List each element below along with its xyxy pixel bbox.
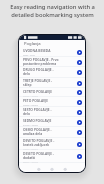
- other: Play chapter: [77, 130, 82, 135]
- staticText: DRUGO POGLAVJE -: [23, 67, 54, 71]
- staticText: SESTO POGLAVJE -: [23, 107, 52, 111]
- staticText: DESETO POGLAVJE -: [23, 151, 54, 155]
- staticText: 61:49 - 72:07: [23, 123, 38, 126]
- other: Play chapter: [77, 90, 82, 95]
- staticText: kratek zakljucek: [23, 142, 50, 146]
- button[interactable]: DEVETO POGLAVJE -: [19, 138, 85, 150]
- staticText: UVODNA BESEDA: [23, 48, 51, 52]
- staticText: dodatki: [23, 155, 36, 159]
- staticText: Poglavja: [24, 41, 41, 47]
- staticText: 34:22 - 47:52: [23, 94, 38, 97]
- staticText: detailed bookmarking system: [11, 11, 94, 19]
- other: Play chapter: [77, 142, 82, 147]
- staticText: 47:52 - 55:54: [23, 103, 38, 106]
- button[interactable]: PRVO POGLAVJE - Prvo: [19, 57, 85, 67]
- button[interactable]: SESTO POGLAVJE -: [19, 107, 85, 117]
- staticText: DEVETO POGLAVJE -: [23, 138, 55, 142]
- other: Play chapter: [77, 120, 82, 125]
- staticText: 88:57 - 93:33: [23, 160, 38, 163]
- other: Play chapter: [77, 100, 82, 105]
- staticText: OSMO POGLAVJE -: [23, 127, 52, 131]
- staticText: analiza dela: [23, 131, 43, 135]
- other: Play chapter: [77, 154, 82, 159]
- staticText: CETRTO POGLAVJE: [23, 89, 53, 93]
- staticText: 72:07 - 79:54: [23, 136, 38, 138]
- button[interactable]: DESETO POGLAVJE -: [19, 150, 85, 163]
- button[interactable]: UVODNA BESEDA: [19, 47, 85, 57]
- button[interactable]: CETRTO POGLAVJE: [19, 88, 85, 97]
- button[interactable]: DRUGO POGLAVJE -: [19, 67, 85, 78]
- staticText: PRVO POGLAVJE - Prvo: [23, 57, 59, 61]
- button[interactable]: PETO POGLAVJE: [19, 97, 85, 107]
- staticText: Easy reading navigation with a: [10, 3, 95, 11]
- button[interactable]: SEDMO POGLAVJE: [19, 117, 85, 127]
- other: Play chapter: [77, 110, 82, 115]
- staticText: delo: [23, 111, 30, 115]
- staticText: 18:26 - 28:10: [23, 76, 38, 78]
- staticText: TRETJE POGLAVJE -: [23, 78, 53, 82]
- staticText: sklep: [23, 82, 32, 86]
- button[interactable]: OSMO POGLAVJE -: [19, 127, 85, 138]
- other: Play chapter: [77, 81, 82, 86]
- staticText: 0:00 - 7:21: [23, 53, 36, 56]
- staticText: delo: [23, 71, 30, 75]
- staticText: PETO POGLAVJE: [23, 98, 48, 102]
- other: Play chapter: [77, 60, 82, 65]
- other: Play chapter: [77, 50, 82, 55]
- staticText: postavitev problema: [23, 61, 57, 65]
- other: Play chapter: [77, 70, 82, 75]
- staticText: 79:54 - 88:57: [23, 147, 38, 150]
- staticText: SEDMO POGLAVJE: [23, 118, 52, 122]
- button[interactable]: TRETJE POGLAVJE -: [19, 78, 85, 88]
